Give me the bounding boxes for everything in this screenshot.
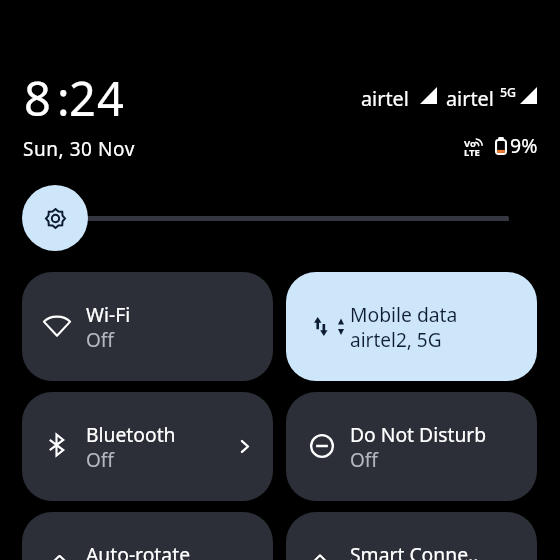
- staticText: Off: [86, 447, 114, 473]
- staticText: Wi-Fi: [86, 301, 131, 327]
- staticText: Sun, 30 Nov: [23, 136, 135, 162]
- button[interactable]: Bluetooth: [22, 392, 273, 501]
- button[interactable]: Do Not Disturb: [286, 392, 537, 501]
- button[interactable]: Auto-rotate: [22, 512, 273, 560]
- staticText: Off: [350, 447, 378, 473]
- staticText: :: [57, 66, 70, 130]
- button[interactable]: Mobile data: [286, 272, 537, 381]
- button[interactable]: Brightness: [22, 185, 509, 251]
- staticText: LTE: [464, 146, 480, 159]
- staticText: 8: [24, 66, 51, 130]
- staticText: airtel: [361, 85, 409, 112]
- button[interactable]: Wi-Fi: [22, 272, 273, 381]
- staticText: 9%: [510, 132, 538, 159]
- staticText: Vo: [464, 137, 476, 150]
- staticText: 5G: [500, 84, 517, 101]
- staticText: Do Not Disturb: [350, 421, 487, 447]
- staticText: Mobile data: [350, 301, 458, 327]
- staticText: airtel2, 5G: [350, 327, 442, 353]
- staticText: Bluetooth: [86, 421, 176, 447]
- staticText: Smart Conne..: [350, 541, 479, 560]
- staticText: Off: [86, 327, 114, 353]
- staticText: 4: [97, 66, 124, 130]
- staticText: airtel: [446, 85, 494, 112]
- button[interactable]: Smart Conne..: [286, 512, 537, 560]
- staticText: 2: [69, 66, 96, 130]
- staticText: Auto-rotate: [86, 541, 191, 560]
